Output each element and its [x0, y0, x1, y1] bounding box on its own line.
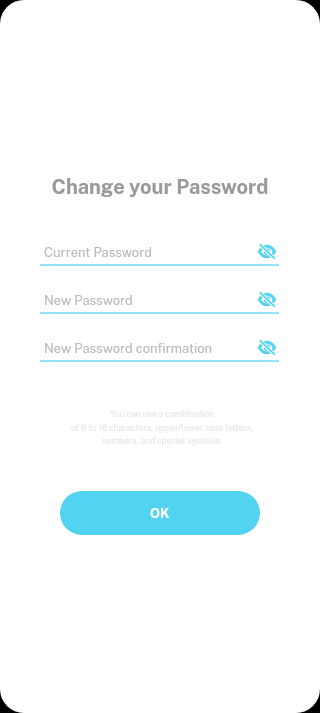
- staticText: New Password: [44, 293, 257, 308]
- button[interactable]: OK: [60, 491, 260, 535]
- button[interactable]: New Password confirmation: [40, 320, 279, 368]
- button[interactable]: Show password: [256, 290, 278, 308]
- button[interactable]: Show password: [256, 338, 278, 356]
- staticText: OK: [150, 506, 170, 521]
- staticText: You can use a combination of 6 to 16 cha…: [2, 409, 320, 446]
- button[interactable]: New Password: [40, 272, 279, 320]
- staticText: Change your Password: [0, 175, 320, 199]
- button[interactable]: Show password: [256, 242, 278, 260]
- button[interactable]: Current Password: [40, 224, 279, 272]
- staticText: New Password confirmation: [44, 341, 257, 356]
- staticText: Current Password: [44, 245, 257, 260]
